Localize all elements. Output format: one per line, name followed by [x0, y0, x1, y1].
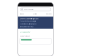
staticText: Active [33, 13, 37, 15]
button[interactable]: Reply from team [20, 34, 51, 38]
staticText: Inbox [20, 13, 24, 15]
staticText: Conversation with Jordan [19, 18, 38, 20]
button[interactable]: Accepted offer [20, 30, 51, 34]
staticText: Reply from team [20, 35, 30, 37]
staticText: Accepted offer [20, 31, 31, 33]
button[interactable]: Inbox [20, 13, 24, 15]
staticText: Recent [46, 13, 51, 15]
staticText: follow up in the morning [19, 26, 33, 28]
button[interactable]: Recent [46, 13, 51, 15]
button[interactable]: Search name [20, 8, 51, 11]
staticText: review the draft tonight and [19, 23, 36, 25]
staticText: Thanks for the update, I will [19, 20, 35, 22]
button[interactable]: Conversation with Jordan [18, 17, 53, 29]
staticText: Search name [23, 8, 33, 10]
button[interactable]: Active [33, 13, 37, 15]
